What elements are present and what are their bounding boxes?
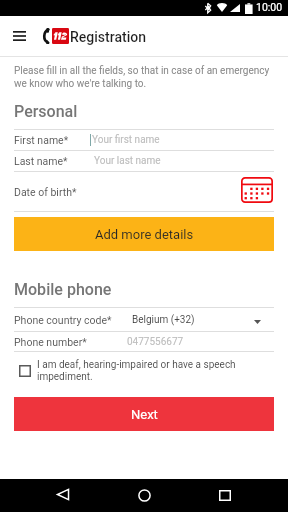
staticText: Add more details <box>95 227 194 242</box>
staticText: Next <box>131 407 158 422</box>
button[interactable]: Recent apps <box>203 479 247 512</box>
staticText: Registration <box>70 29 146 45</box>
button[interactable]: Phone number* <box>0 332 288 351</box>
staticText: Date of birth* <box>14 186 77 198</box>
staticText: Phone number* <box>14 336 87 348</box>
button[interactable]: Next <box>14 397 274 431</box>
button[interactable]: Add more details <box>14 217 274 251</box>
staticText: Your first name <box>92 134 160 146</box>
staticText: Last name* <box>14 155 68 167</box>
button[interactable]: Home <box>122 479 166 512</box>
staticText: First name* <box>14 134 69 146</box>
staticText: I am deaf, hearing-impaired or have a sp… <box>37 359 236 383</box>
button[interactable]: Last name* <box>0 151 288 171</box>
staticText: 10:00 <box>256 1 283 13</box>
staticText: Phone country code* <box>14 314 112 326</box>
staticText: Your last name <box>94 155 161 167</box>
staticText: Please fill in all the fields, so that i… <box>14 65 270 89</box>
staticText: 0477556677 <box>127 336 184 348</box>
staticText: Mobile phone <box>14 280 112 299</box>
button[interactable]: Open navigation menu <box>0 16 38 56</box>
staticText: Belgium (+32) <box>132 314 195 326</box>
button[interactable]: Phone country code* <box>0 308 288 332</box>
staticText: Personal <box>14 102 78 121</box>
button[interactable]: I am deaf, hearing-impaired or have a sp… <box>0 355 288 387</box>
button[interactable]: Back <box>41 479 85 512</box>
button[interactable]: Date of birth* <box>0 172 288 212</box>
button[interactable]: First name* <box>0 130 288 150</box>
